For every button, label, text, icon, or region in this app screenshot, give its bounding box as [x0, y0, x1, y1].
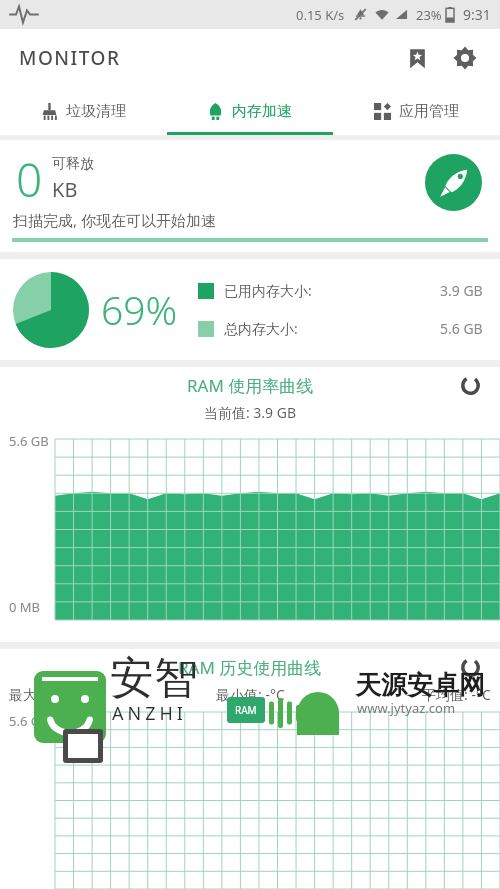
staticText: 0 MB [9, 598, 41, 616]
staticText: 3.9 GB [440, 281, 483, 300]
staticText: 0.15 K/s [296, 6, 345, 24]
staticText: 平均值: -°C [422, 685, 491, 704]
staticText: RAM 历史使用曲线 [178, 656, 322, 679]
staticText: 0 [16, 148, 43, 211]
staticText: 总内存大小: [224, 319, 298, 338]
button[interactable]: Bookmark [394, 35, 440, 81]
staticText: 内存加速 [232, 102, 292, 121]
button[interactable]: Boost [425, 154, 482, 211]
staticText: 已用内存大小: [224, 281, 312, 300]
staticText: 当前值: 3.9 GB [0, 403, 500, 422]
staticText: www.jytyaz.com [357, 699, 456, 717]
staticText: ANZHI [112, 701, 187, 726]
staticText: 扫描完成, 你现在可以开始加速 [13, 210, 216, 230]
staticText: KB [52, 176, 78, 203]
staticText: RAM [235, 703, 257, 717]
button[interactable]: Settings [442, 35, 488, 81]
button[interactable]: 垃圾清理 [0, 87, 166, 135]
staticText: 安智 [110, 651, 198, 706]
staticText: MONITOR [19, 45, 121, 71]
button[interactable]: 内存加速 [166, 87, 333, 135]
staticText: 应用管理 [399, 102, 459, 121]
staticText: 5.6 GB [9, 432, 49, 450]
staticText: 23% [416, 6, 442, 24]
staticText: 垃圾清理 [66, 102, 126, 121]
button[interactable]: Refresh history curve [451, 649, 489, 685]
staticText: 可释放 [52, 155, 94, 173]
staticText: 9:31 [463, 5, 491, 24]
button[interactable]: Refresh RAM curve [451, 367, 489, 403]
button[interactable]: 应用管理 [333, 87, 500, 135]
staticText: 天源安卓网 [355, 669, 485, 702]
staticText: 5.6 GB [9, 712, 49, 730]
staticText: 69% [101, 283, 178, 336]
staticText: 最小值: -°C [216, 685, 285, 704]
staticText: 最大值: -°C [9, 685, 78, 704]
staticText: 5.6 GB [440, 319, 483, 338]
staticText: RAM 使用率曲线 [187, 374, 314, 397]
